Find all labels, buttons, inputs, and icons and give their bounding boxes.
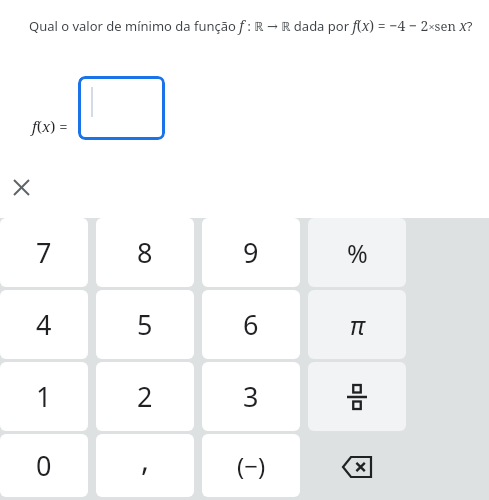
button[interactable]: (−)	[202, 434, 300, 497]
staticText: ,	[141, 439, 150, 480]
staticText: 3	[243, 378, 259, 415]
button[interactable]: 7	[0, 218, 88, 287]
button[interactable]: π	[308, 290, 406, 359]
staticText: 4	[36, 306, 52, 343]
staticText: (−)	[237, 449, 266, 482]
staticText: 1	[36, 378, 52, 415]
button[interactable]: 5	[96, 290, 194, 359]
staticText: 8	[137, 234, 153, 271]
staticText: 0	[36, 447, 52, 484]
button[interactable]: 4	[0, 290, 88, 359]
button[interactable]	[308, 362, 406, 431]
button[interactable]: 2	[96, 362, 194, 431]
button[interactable]	[78, 76, 165, 140]
staticText: 2	[137, 378, 153, 415]
button[interactable]: 0	[0, 434, 88, 497]
staticText: π	[350, 308, 365, 342]
staticText: 5	[137, 306, 153, 343]
staticText: 7	[36, 234, 52, 271]
staticText: %	[347, 236, 368, 270]
button[interactable]: 9	[202, 218, 300, 287]
button[interactable]: ,	[96, 434, 194, 497]
staticText: 6	[243, 306, 259, 343]
staticText: f(x) =	[32, 116, 68, 136]
button[interactable]: 3	[202, 362, 300, 431]
button[interactable]: Apagar	[308, 434, 406, 500]
button[interactable]: 1	[0, 362, 88, 431]
button[interactable]: Fechar	[7, 173, 35, 201]
button[interactable]: 8	[96, 218, 194, 287]
button[interactable]: 6	[202, 290, 300, 359]
staticText: Qual o valor de mínimo da função f : ℝ →…	[29, 16, 473, 35]
button[interactable]: %	[308, 218, 406, 287]
staticText: 9	[243, 234, 259, 271]
